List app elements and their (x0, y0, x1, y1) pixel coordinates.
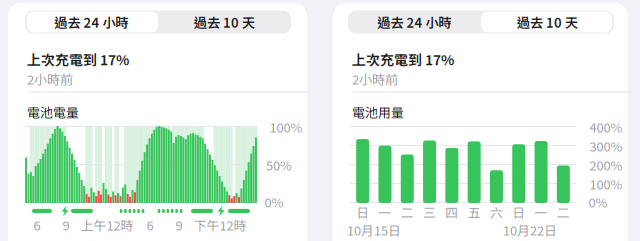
staticText: 二 (401, 203, 414, 221)
staticText: 過去 24 小時 (54, 12, 128, 31)
staticText: 上次充電到 17% (352, 49, 454, 69)
staticText: 0% (588, 193, 607, 211)
staticText: 0% (264, 193, 283, 211)
staticText: 日 (512, 203, 525, 221)
staticText: 10月22日 (503, 221, 557, 239)
button[interactable]: 過去 10 天 (158, 10, 291, 33)
button[interactable]: 過去 24 小時 (348, 10, 481, 33)
staticText: 9 (175, 216, 182, 234)
staticText: 2小時前 (352, 69, 398, 88)
button[interactable]: 過去 24 小時 (25, 10, 158, 33)
staticText: 50% (266, 156, 292, 174)
staticText: 200% (589, 156, 622, 174)
staticText: 9 (62, 216, 69, 234)
staticText: 6 (146, 216, 153, 234)
button[interactable]: 過去 10 天 (481, 10, 614, 33)
staticText: 過去 24 小時 (377, 12, 451, 31)
staticText: 電池用量 (352, 103, 404, 121)
staticText: 300% (589, 137, 622, 155)
staticText: 100% (269, 118, 302, 136)
staticText: 日 (356, 203, 369, 221)
staticText: 三 (423, 203, 436, 221)
staticText: 一 (378, 203, 391, 221)
staticText: 過去 10 天 (194, 12, 255, 31)
staticText: 五 (468, 203, 481, 221)
staticText: 四 (445, 203, 458, 221)
staticText: 六 (490, 203, 503, 221)
staticText: 二 (557, 203, 570, 221)
staticText: 6 (33, 216, 40, 234)
staticText: 2小時前 (27, 69, 73, 88)
staticText: 過去 10 天 (517, 12, 578, 31)
staticText: 一 (534, 203, 547, 221)
staticText: 10月15日 (347, 221, 401, 239)
staticText: 400% (589, 118, 622, 136)
staticText: 上次充電到 17% (27, 49, 129, 69)
staticText: 電池電量 (27, 103, 79, 121)
staticText: 100% (589, 175, 622, 193)
staticText: 下午12時 (193, 216, 246, 234)
staticText: 上午12時 (80, 216, 133, 234)
